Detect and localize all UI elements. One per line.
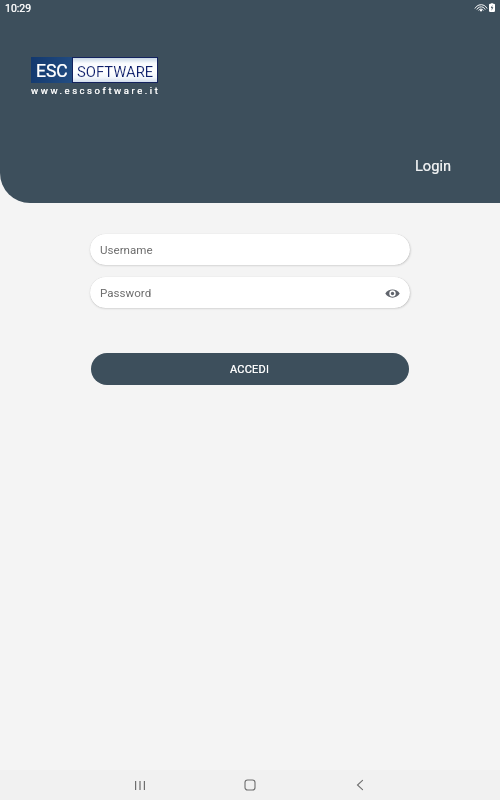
button[interactable]: ACCEDI <box>91 353 409 385</box>
staticText: SOFTWARE <box>77 63 154 80</box>
button[interactable]: Password <box>90 277 410 308</box>
button[interactable]: Back <box>340 770 380 800</box>
button[interactable]: Show password <box>382 283 402 303</box>
staticText: ESC <box>36 61 68 82</box>
staticText: www.escsoftware.it <box>31 85 161 96</box>
button[interactable]: Username <box>90 234 410 265</box>
staticText: ACCEDI <box>230 363 270 376</box>
button[interactable]: Home <box>230 770 270 800</box>
staticText: Username <box>100 243 153 257</box>
staticText: Login <box>415 157 451 174</box>
button[interactable]: Recents <box>120 770 160 800</box>
staticText: Password <box>100 286 152 300</box>
staticText: 10:29 <box>5 2 32 14</box>
